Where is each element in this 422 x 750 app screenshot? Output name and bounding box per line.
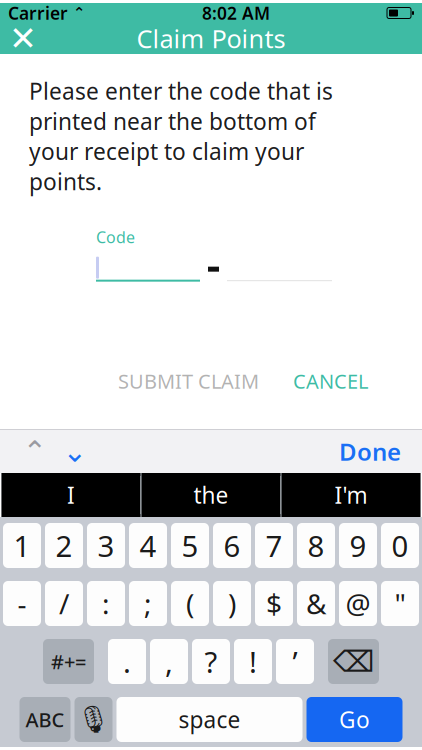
button[interactable]: CANCEL bbox=[285, 360, 376, 402]
button[interactable]: 4 bbox=[129, 523, 167, 568]
button[interactable]: : bbox=[87, 581, 125, 626]
staticText: 1 bbox=[13, 526, 30, 565]
staticText: ( bbox=[186, 585, 194, 622]
staticText: 2 bbox=[55, 526, 72, 565]
staticText: : bbox=[102, 585, 110, 622]
staticText: @ bbox=[345, 585, 370, 622]
button[interactable]: the bbox=[141, 473, 280, 517]
staticText: & bbox=[306, 585, 326, 622]
staticText: - bbox=[17, 585, 26, 622]
button[interactable]: 8 bbox=[297, 523, 335, 568]
button[interactable]: & bbox=[297, 581, 335, 626]
staticText: 9 bbox=[349, 526, 366, 565]
staticText: ? bbox=[204, 642, 217, 681]
staticText: the bbox=[193, 480, 228, 510]
staticText: I bbox=[67, 480, 75, 510]
button[interactable]: 3 bbox=[87, 523, 125, 568]
staticText: 🎙 bbox=[76, 704, 110, 735]
button[interactable]: ! bbox=[234, 639, 272, 684]
staticText: Done bbox=[339, 436, 401, 467]
button[interactable]: Dictate bbox=[74, 697, 112, 742]
staticText: ⌫ bbox=[333, 645, 374, 678]
staticText: 5 bbox=[181, 526, 198, 565]
staticText: ⌄ bbox=[62, 435, 87, 468]
button[interactable]: 1 bbox=[3, 523, 41, 568]
button[interactable]: ’ bbox=[276, 639, 314, 684]
staticText: 8:02 AM bbox=[202, 1, 270, 24]
button[interactable]: space bbox=[116, 697, 302, 742]
button[interactable]: Done bbox=[329, 428, 411, 475]
staticText: CANCEL bbox=[293, 368, 368, 394]
staticText: 8 bbox=[307, 526, 324, 565]
button[interactable]: 7 bbox=[255, 523, 293, 568]
staticText: ✕ bbox=[9, 20, 37, 57]
staticText: Go bbox=[339, 704, 370, 734]
staticText: ⌃ bbox=[22, 435, 47, 468]
staticText: ; bbox=[144, 585, 152, 622]
staticText: ) bbox=[228, 585, 236, 622]
staticText: Please enter the code that is printed ne… bbox=[29, 76, 333, 196]
staticText: #+= bbox=[51, 648, 86, 675]
button[interactable]: Delete bbox=[328, 639, 379, 684]
staticText: 7 bbox=[265, 526, 282, 565]
button[interactable]: / bbox=[45, 581, 83, 626]
button[interactable]: " bbox=[381, 581, 419, 626]
staticText: / bbox=[59, 585, 69, 622]
button[interactable]: ? bbox=[192, 639, 230, 684]
staticText: Code bbox=[96, 226, 135, 248]
button[interactable]: - bbox=[3, 581, 41, 626]
staticText: Claim Points bbox=[136, 22, 285, 55]
button[interactable]: 5 bbox=[171, 523, 209, 568]
button[interactable]: $ bbox=[255, 581, 293, 626]
button[interactable]: 9 bbox=[339, 523, 377, 568]
button[interactable]: 0 bbox=[381, 523, 419, 568]
button[interactable]: @ bbox=[339, 581, 377, 626]
button[interactable]: 2 bbox=[45, 523, 83, 568]
staticText: ! bbox=[249, 642, 257, 681]
button[interactable]: ) bbox=[213, 581, 251, 626]
staticText: ABC bbox=[25, 706, 64, 733]
staticText: , bbox=[165, 642, 173, 681]
button[interactable]: #+= bbox=[43, 639, 94, 684]
staticText: 0 bbox=[391, 526, 408, 565]
staticText: 4 bbox=[139, 526, 156, 565]
button[interactable]: Next field bbox=[55, 431, 95, 471]
button[interactable]: , bbox=[150, 639, 188, 684]
button[interactable]: ; bbox=[129, 581, 167, 626]
button[interactable]: SUBMIT CLAIM bbox=[110, 360, 267, 402]
staticText: 3 bbox=[97, 526, 114, 565]
staticText: . bbox=[123, 642, 131, 681]
staticText: space bbox=[178, 704, 240, 734]
button[interactable]: Go bbox=[306, 697, 402, 742]
button[interactable]: ABC bbox=[19, 697, 70, 742]
button[interactable]: . bbox=[108, 639, 146, 684]
staticText: SUBMIT CLAIM bbox=[118, 368, 259, 394]
staticText: $ bbox=[266, 585, 282, 622]
button[interactable]: ( bbox=[171, 581, 209, 626]
staticText: " bbox=[394, 585, 405, 622]
staticText: 6 bbox=[223, 526, 240, 565]
button[interactable]: 6 bbox=[213, 523, 251, 568]
staticText: ’ bbox=[292, 642, 297, 681]
staticText: ⌃ bbox=[68, 5, 85, 21]
button[interactable]: Previous field bbox=[15, 431, 55, 471]
button[interactable]: I'm bbox=[281, 473, 420, 517]
staticText: Carrier bbox=[8, 1, 68, 24]
staticText: I'm bbox=[334, 480, 367, 510]
button[interactable]: Close bbox=[0, 20, 46, 56]
button[interactable]: I bbox=[1, 473, 140, 517]
